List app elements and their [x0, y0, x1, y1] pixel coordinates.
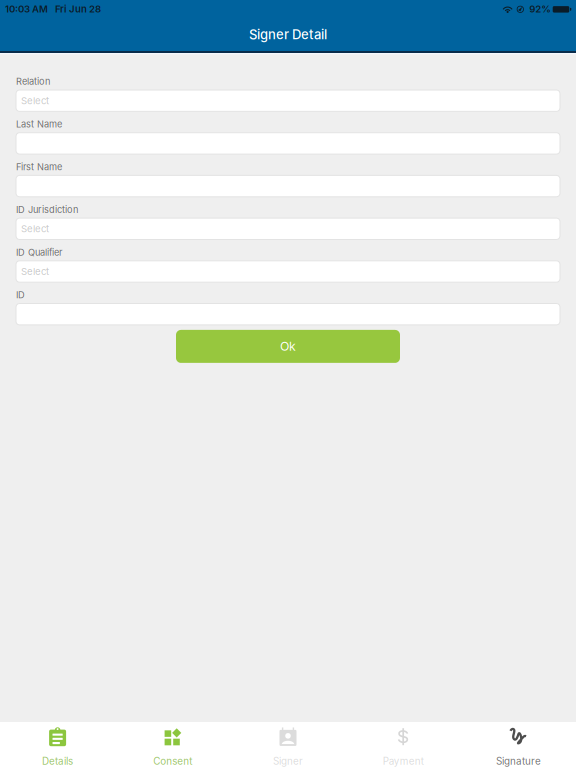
- button[interactable]: Details: [0, 722, 115, 768]
- staticText: ID Qualifier: [16, 247, 62, 258]
- staticText: ID Jurisdiction: [16, 204, 78, 215]
- staticText: Last Name: [16, 119, 62, 130]
- staticText: ID: [16, 289, 25, 300]
- button[interactable]: Select: [16, 261, 560, 282]
- button[interactable]: [16, 175, 560, 197]
- staticText: Fri Jun 28: [55, 3, 101, 15]
- staticText: Ok: [280, 339, 296, 354]
- staticText: Signer Detail: [249, 27, 327, 42]
- staticText: Consent: [153, 755, 192, 767]
- button[interactable]: Select: [16, 218, 560, 239]
- staticText: First Name: [16, 161, 62, 172]
- button[interactable]: Ok: [176, 330, 400, 363]
- staticText: Details: [42, 755, 73, 767]
- button[interactable]: Payment: [346, 722, 461, 768]
- staticText: Signature: [496, 755, 541, 767]
- staticText: Select: [21, 266, 49, 277]
- staticText: Select: [21, 95, 49, 106]
- button[interactable]: Signer: [230, 722, 346, 768]
- staticText: Payment: [383, 755, 424, 767]
- staticText: Select: [21, 223, 49, 235]
- staticText: 92%: [529, 3, 551, 15]
- button[interactable]: Consent: [115, 722, 230, 768]
- button[interactable]: Select: [16, 90, 560, 111]
- button[interactable]: Signature: [461, 722, 576, 768]
- staticText: Signer: [273, 755, 303, 767]
- staticText: 10:03 AM: [5, 3, 48, 15]
- button[interactable]: [16, 303, 560, 325]
- staticText: Relation: [16, 76, 50, 87]
